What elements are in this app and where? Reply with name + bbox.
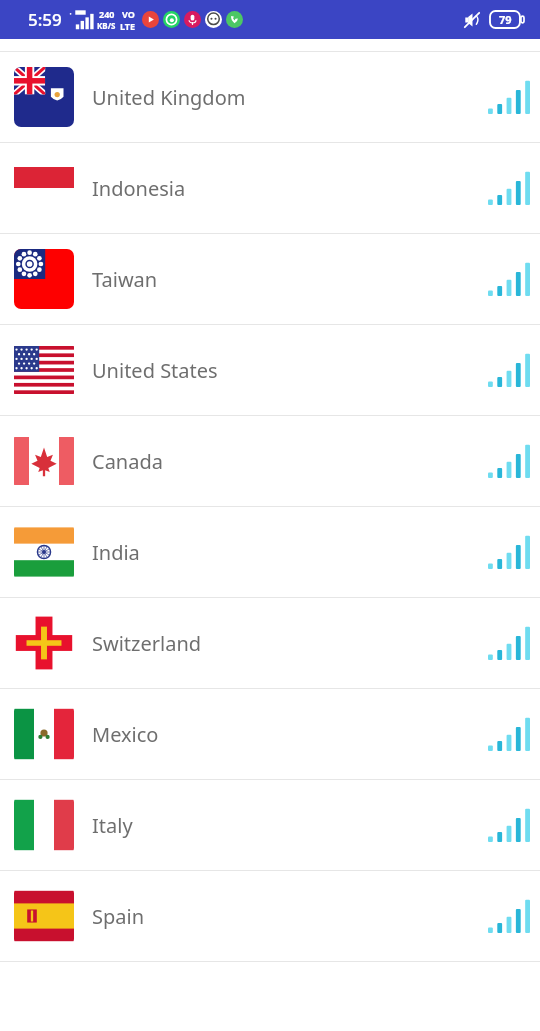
other: Signal strength: [488, 0, 530, 23]
button[interactable]: Italy: [0, 780, 540, 870]
staticText: VO: [122, 8, 135, 20]
other: Signal strength: [488, 444, 530, 478]
other: Silent mode: [460, 11, 484, 29]
staticText: Indonesia: [92, 175, 488, 202]
button[interactable]: Singapore: [0, 0, 540, 51]
button[interactable]: India: [0, 507, 540, 597]
other: Signal strength: [488, 899, 530, 933]
staticText: Singapore: [92, 0, 488, 20]
other: Signal strength: [488, 717, 530, 751]
staticText: Italy: [92, 812, 488, 839]
staticText: 240: [99, 8, 115, 20]
staticText: India: [92, 539, 488, 566]
button[interactable]: Switzerland: [0, 598, 540, 688]
staticText: 5:59: [28, 8, 62, 31]
staticText: LTE: [120, 20, 136, 32]
button[interactable]: Mexico: [0, 689, 540, 779]
staticText: Canada: [92, 448, 488, 475]
staticText: United States: [92, 357, 488, 384]
staticText: Switzerland: [92, 630, 488, 657]
button[interactable]: Taiwan: [0, 234, 540, 324]
staticText: Taiwan: [92, 266, 488, 293]
button[interactable]: Canada: [0, 416, 540, 506]
staticText: United Kingdom: [92, 84, 488, 111]
button[interactable]: United States: [0, 325, 540, 415]
other: Signal strength: [488, 262, 530, 296]
button[interactable]: Spain: [0, 871, 540, 961]
other: Signal strength: [488, 626, 530, 660]
other: Signal strength: [488, 535, 530, 569]
button[interactable]: United Kingdom: [0, 52, 540, 142]
staticText: Spain: [92, 903, 488, 930]
other: Signal strength: [488, 353, 530, 387]
staticText: KB/S: [97, 20, 116, 31]
staticText: 79: [499, 12, 512, 27]
other: Signal strength: [488, 80, 530, 114]
staticText: Mexico: [92, 721, 488, 748]
other: Signal strength: [488, 808, 530, 842]
other: Signal strength: [488, 171, 530, 205]
button[interactable]: Indonesia: [0, 143, 540, 233]
